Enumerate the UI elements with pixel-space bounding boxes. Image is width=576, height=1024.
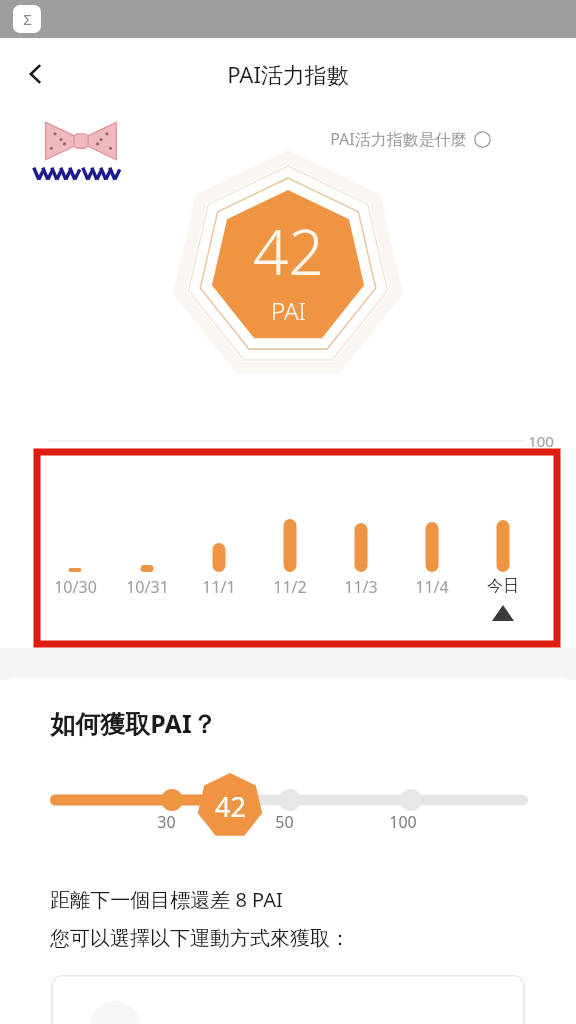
staticText: 30 xyxy=(157,811,176,833)
button[interactable]: PAI活力指數是什麼 xyxy=(330,128,491,150)
staticText: 100 xyxy=(389,811,417,833)
staticText: 11/3 xyxy=(344,576,378,598)
button[interactable]: 10/30 xyxy=(39,576,111,598)
staticText: PAI活力指數是什麼 xyxy=(330,128,467,150)
staticText: PAI活力指數 xyxy=(227,59,349,89)
button[interactable] xyxy=(51,975,525,1024)
staticText: 10/30 xyxy=(54,576,97,598)
staticText: 10/31 xyxy=(126,576,169,598)
staticText: 今日 xyxy=(487,576,519,596)
button[interactable]: 11/3 xyxy=(325,576,397,598)
staticText: 42 xyxy=(215,788,246,825)
staticText: PAI xyxy=(271,294,306,327)
button[interactable]: Back xyxy=(14,52,58,96)
staticText: 11/2 xyxy=(273,576,307,598)
staticText: 距離下一個目標還差 8 PAI xyxy=(50,886,283,913)
button[interactable]: 10/31 xyxy=(111,576,183,598)
staticText: 50 xyxy=(275,811,294,833)
button[interactable]: 11/4 xyxy=(396,576,468,598)
staticText: 42 xyxy=(253,209,324,293)
button[interactable]: 11/1 xyxy=(183,576,255,598)
staticText: 11/1 xyxy=(202,576,236,598)
button[interactable]: 11/2 xyxy=(254,576,326,598)
staticText: 11/4 xyxy=(415,576,449,598)
button[interactable]: 今日 xyxy=(467,576,539,596)
staticText: Σ xyxy=(23,9,32,29)
staticText: 100 xyxy=(528,431,554,451)
staticText: 您可以選擇以下運動方式來獲取： xyxy=(50,926,350,951)
staticText: 如何獲取PAI？ xyxy=(50,706,217,740)
